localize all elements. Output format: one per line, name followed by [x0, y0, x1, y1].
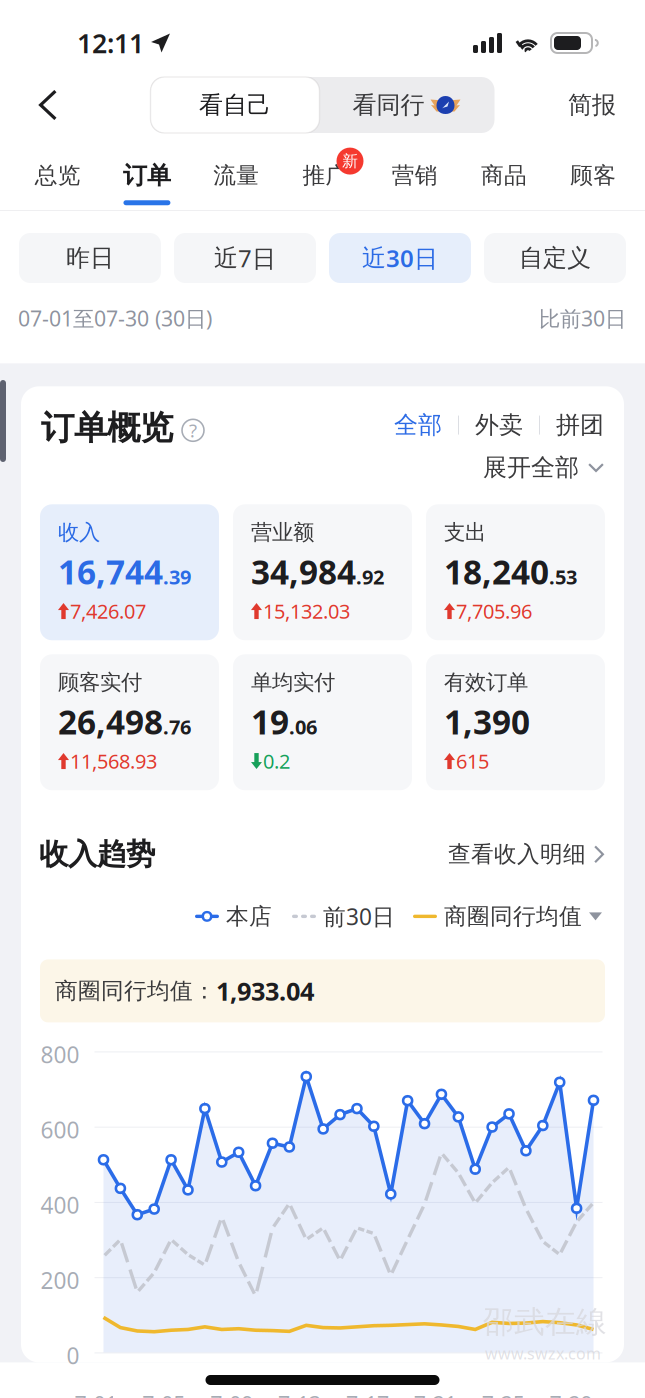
staticText: 34,984	[251, 549, 356, 594]
staticText: 7-29	[550, 1390, 593, 1398]
staticText: 商圈同行均值	[444, 902, 582, 930]
button[interactable]: 近	[329, 233, 471, 283]
staticText: ?	[189, 418, 197, 443]
staticText: 总览	[35, 162, 81, 189]
staticText: 有效订单	[444, 669, 528, 695]
staticText: 7,705.96	[456, 598, 532, 624]
staticText: 7,426.07	[70, 598, 146, 624]
button[interactable]: 总览	[13, 142, 102, 204]
button[interactable]: 推广	[281, 142, 370, 204]
button[interactable]: 展开全部	[483, 453, 604, 482]
staticText: 600	[40, 1115, 79, 1145]
staticText: 商品	[481, 162, 527, 189]
staticText: 拼团	[556, 410, 604, 440]
staticText: 营销	[392, 162, 438, 189]
staticText: 12:11	[77, 25, 144, 61]
staticText: 支出	[444, 519, 486, 545]
staticText: .39	[163, 563, 191, 590]
staticText: 推广	[302, 162, 348, 189]
staticText: 顾客实付	[58, 669, 142, 695]
staticText: 收入	[58, 519, 100, 545]
staticText: 26,498	[58, 699, 163, 744]
staticText: 200	[40, 1265, 79, 1295]
staticText: 11,568.93	[70, 748, 157, 774]
staticText: 30日	[386, 242, 438, 274]
staticText: 7-25	[482, 1390, 525, 1398]
staticText: 单均实付	[251, 669, 335, 695]
staticText: 顾客	[570, 162, 616, 189]
button[interactable]: 近	[174, 233, 316, 283]
staticText: .76	[163, 713, 191, 740]
staticText: 0	[66, 1340, 79, 1370]
staticText: 流量	[213, 162, 259, 189]
staticText: 外卖	[475, 410, 523, 440]
staticText: 自定义	[519, 243, 591, 273]
button[interactable]: 流量	[192, 142, 281, 204]
button[interactable]: 简报	[544, 77, 645, 133]
button[interactable]: 外卖	[475, 410, 523, 440]
button[interactable]: 拼团	[556, 410, 604, 440]
staticText: 400	[40, 1190, 79, 1220]
button[interactable]: 看自己	[150, 77, 319, 133]
staticText: 商圈同行均值：	[55, 977, 216, 1005]
button[interactable]: 订单	[102, 141, 192, 205]
staticText: .92	[356, 563, 384, 590]
staticText: 收入趋势	[39, 836, 155, 872]
staticText: 订单	[123, 161, 171, 190]
button[interactable]: 看同行	[319, 79, 494, 131]
staticText: 本店	[226, 902, 272, 930]
staticText: 15,132.03	[263, 598, 350, 624]
staticText: 800	[40, 1039, 79, 1069]
button[interactable]: 查看收入明细	[448, 840, 604, 868]
staticText: 07-01至07-30 (30日)	[18, 304, 212, 332]
staticText: 7-13	[278, 1390, 321, 1398]
staticText: 18,240	[444, 549, 549, 594]
button[interactable]: 营销	[370, 142, 459, 204]
staticText: 16,744	[58, 549, 163, 594]
staticText: 前30日	[323, 901, 395, 931]
staticText: 7-01	[74, 1390, 117, 1398]
staticText: 7日	[238, 242, 276, 274]
staticText: .06	[289, 713, 317, 740]
button[interactable]: Back	[0, 77, 79, 132]
staticText: 新	[342, 151, 358, 171]
staticText: 看自己	[199, 90, 271, 120]
staticText: 邵武在線	[483, 1303, 607, 1341]
staticText: 订单概览	[41, 407, 173, 448]
button[interactable]: 全部	[394, 410, 442, 440]
staticText: 昨日	[66, 243, 114, 273]
staticText: 615	[456, 748, 489, 774]
staticText: 1,390	[444, 699, 530, 744]
staticText: 19	[251, 699, 289, 744]
staticText: 0.2	[263, 748, 290, 774]
button[interactable]: 商圈同行均值	[413, 902, 602, 930]
staticText: 全部	[394, 410, 442, 440]
staticText: 营业额	[251, 519, 314, 545]
staticText: 近	[362, 243, 386, 273]
staticText: 7-09	[210, 1390, 253, 1398]
button[interactable]: 顾客	[549, 142, 638, 204]
staticText: 近	[214, 243, 238, 273]
button[interactable]: 自定义	[484, 233, 626, 283]
staticText: 查看收入明细	[448, 840, 586, 868]
button[interactable]: 商品	[459, 142, 549, 204]
button[interactable]: 昨日	[19, 233, 161, 283]
staticText: www.swzx.com	[485, 1343, 601, 1364]
staticText: 展开全部	[483, 453, 579, 482]
staticText: 简报	[568, 90, 616, 120]
staticText: .53	[549, 563, 577, 590]
staticText: 1,933.04	[216, 974, 314, 1008]
staticText: 看同行	[352, 90, 424, 120]
staticText: 比前30日	[539, 304, 626, 332]
staticText: 7-21	[414, 1390, 457, 1398]
staticText: 7-05	[142, 1390, 185, 1398]
staticText: 7-17	[346, 1390, 389, 1398]
